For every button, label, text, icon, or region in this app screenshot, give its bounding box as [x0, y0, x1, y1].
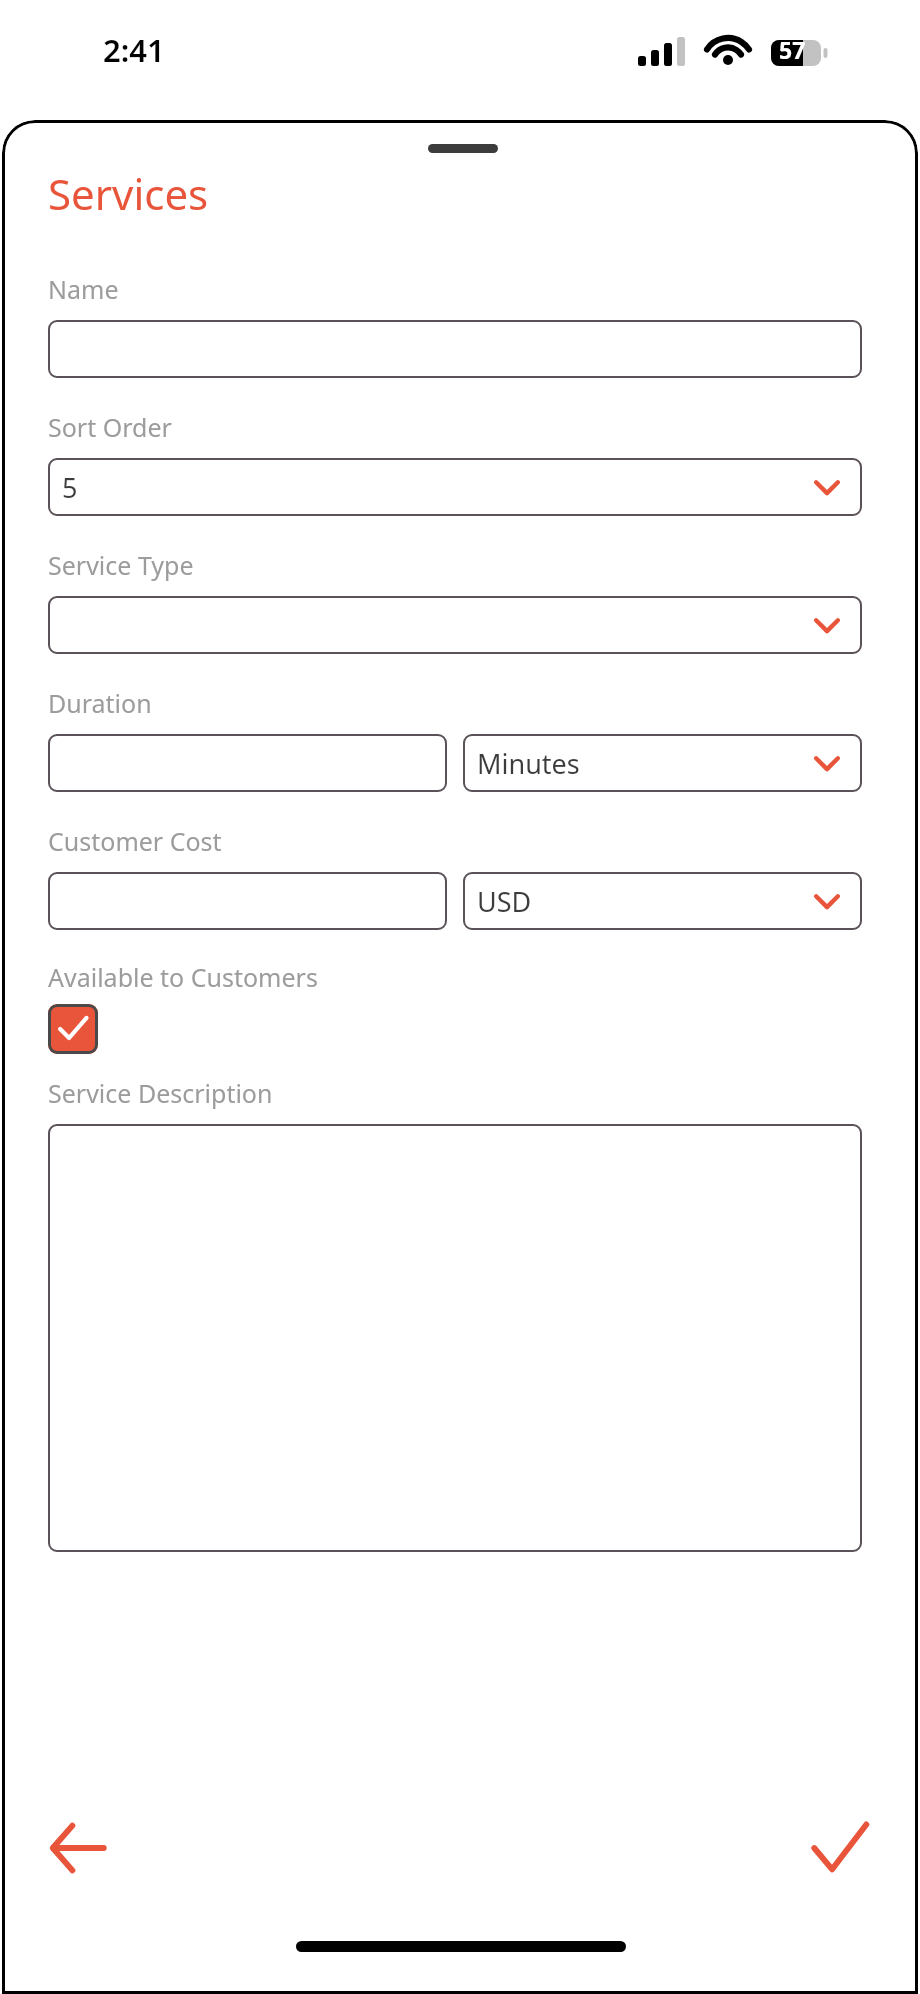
staticText: Sort Order: [48, 410, 172, 444]
button[interactable]: Back: [32, 1802, 124, 1894]
staticText: 2:41: [103, 29, 165, 71]
button[interactable]: 5: [48, 458, 862, 516]
staticText: Service Description: [48, 1076, 273, 1110]
button[interactable]: USD: [463, 872, 862, 930]
staticText: Available to Customers: [48, 960, 318, 994]
button[interactable]: Minutes: [463, 734, 862, 792]
button[interactable]: [48, 596, 862, 654]
staticText: Name: [48, 272, 119, 306]
button[interactable]: [48, 320, 862, 378]
staticText: Minutes: [477, 745, 580, 782]
button[interactable]: Service Description: [48, 1124, 862, 1552]
staticText: Duration: [48, 686, 152, 720]
button[interactable]: [48, 872, 447, 930]
staticText: Customer Cost: [48, 824, 222, 858]
staticText: 57: [779, 34, 806, 65]
button[interactable]: Save: [794, 1802, 886, 1894]
button[interactable]: [48, 734, 447, 792]
staticText: Services: [48, 165, 209, 222]
staticText: USD: [477, 883, 532, 920]
staticText: 5: [62, 469, 78, 506]
button[interactable]: Available to Customers checkbox: [48, 1004, 98, 1054]
staticText: Service Type: [48, 548, 194, 582]
